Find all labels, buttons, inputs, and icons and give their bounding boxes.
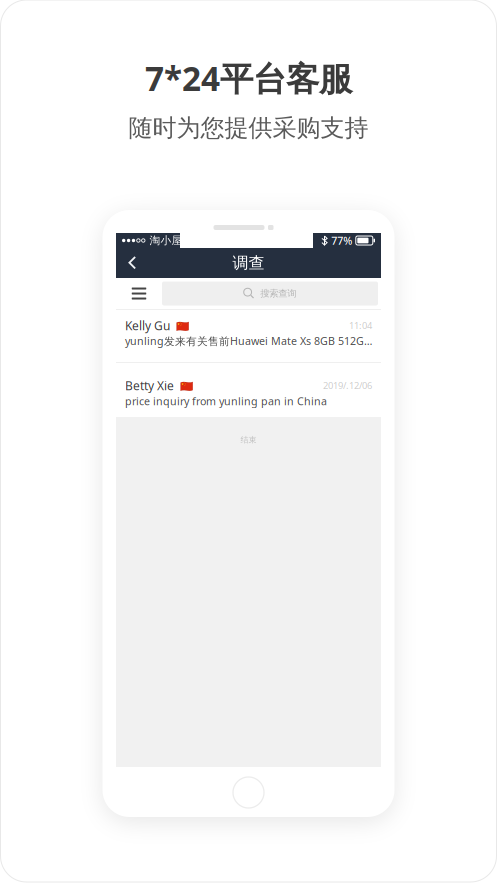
staticText: 2019/.12/06 — [323, 379, 372, 392]
button[interactable]: Back — [116, 248, 148, 278]
staticText: Betty Xie — [125, 377, 174, 393]
staticText: 随时为您提供采购支持 — [128, 113, 368, 143]
staticText: 调查 — [232, 253, 264, 273]
staticText: Kelly Gu — [125, 317, 170, 333]
button[interactable]: Betty Xie — [116, 363, 381, 417]
staticText: 🇨🇳 — [170, 318, 189, 333]
button[interactable]: Menu — [116, 278, 162, 309]
staticText: 11:04 — [349, 319, 372, 332]
staticText: 🇨🇳 — [174, 378, 193, 393]
staticText: yunling发来有关售前Huawei Mate Xs 8GB 512GB... — [125, 334, 372, 348]
staticText: 搜索查询 — [260, 288, 296, 299]
staticText: 7*24平台客服 — [145, 56, 352, 100]
button[interactable]: Kelly Gu — [116, 310, 381, 362]
button[interactable]: 搜索查询 — [162, 281, 378, 305]
staticText: 结束 — [240, 435, 256, 445]
staticText: price inquiry from yunling pan in China — [125, 394, 327, 408]
staticText: 77% — [331, 233, 352, 248]
staticText: 淘小屋 — [149, 234, 182, 247]
